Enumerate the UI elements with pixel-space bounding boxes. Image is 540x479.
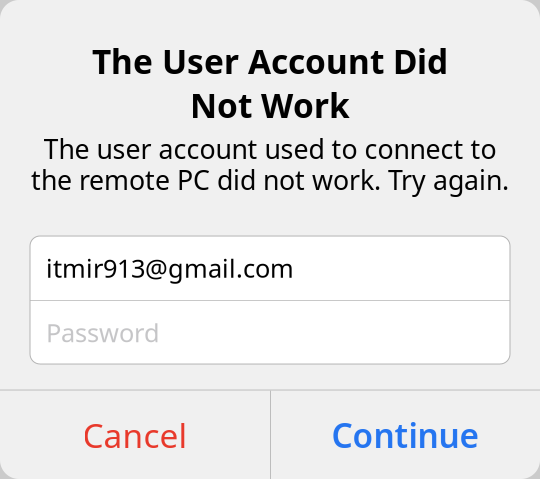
button[interactable]: User name [30, 236, 510, 300]
staticText: The user account used to connect to [43, 131, 496, 166]
staticText: the remote PC did not work. Try again. [31, 162, 509, 197]
button[interactable]: Continue [271, 390, 540, 479]
button[interactable]: Password [30, 301, 510, 364]
staticText: Not Work [190, 83, 350, 127]
staticText: Password [46, 316, 160, 349]
staticText: Cancel [82, 413, 187, 457]
staticText: The User Account Did [92, 39, 448, 83]
staticText: Continue [331, 413, 479, 457]
button[interactable]: Cancel [0, 390, 270, 479]
staticText: itmir913@gmail.com [46, 251, 294, 285]
